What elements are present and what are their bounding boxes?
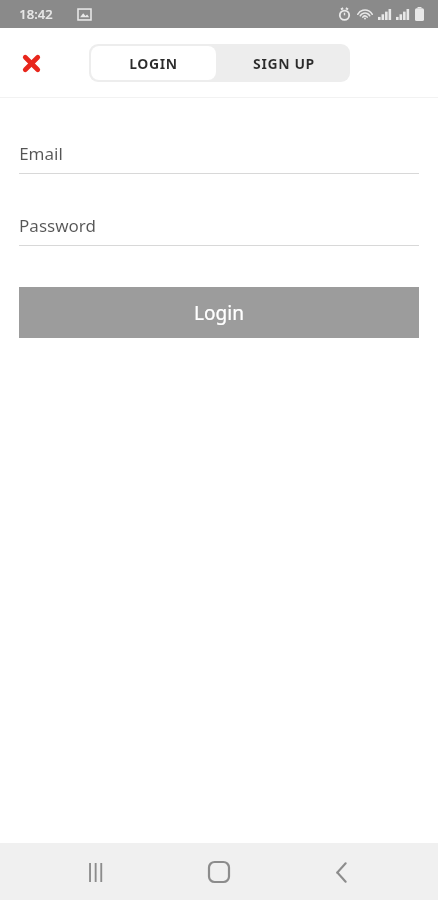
staticText: Password <box>19 214 96 237</box>
staticText: SIGN UP <box>253 54 315 73</box>
staticText: LOGIN <box>129 54 178 73</box>
button[interactable]: SIGN UP <box>218 44 350 82</box>
button[interactable]: Email <box>19 142 419 174</box>
button[interactable]: Home <box>193 846 245 898</box>
staticText: 18:42 <box>19 5 53 23</box>
button[interactable]: LOGIN <box>91 46 216 80</box>
button[interactable]: Login <box>19 287 419 338</box>
staticText: Login <box>194 300 244 326</box>
button[interactable]: Password <box>19 214 419 246</box>
button[interactable]: Back <box>315 846 367 898</box>
button[interactable]: Recents <box>70 846 122 898</box>
staticText: Email <box>19 142 63 165</box>
button[interactable]: Close <box>11 43 51 83</box>
